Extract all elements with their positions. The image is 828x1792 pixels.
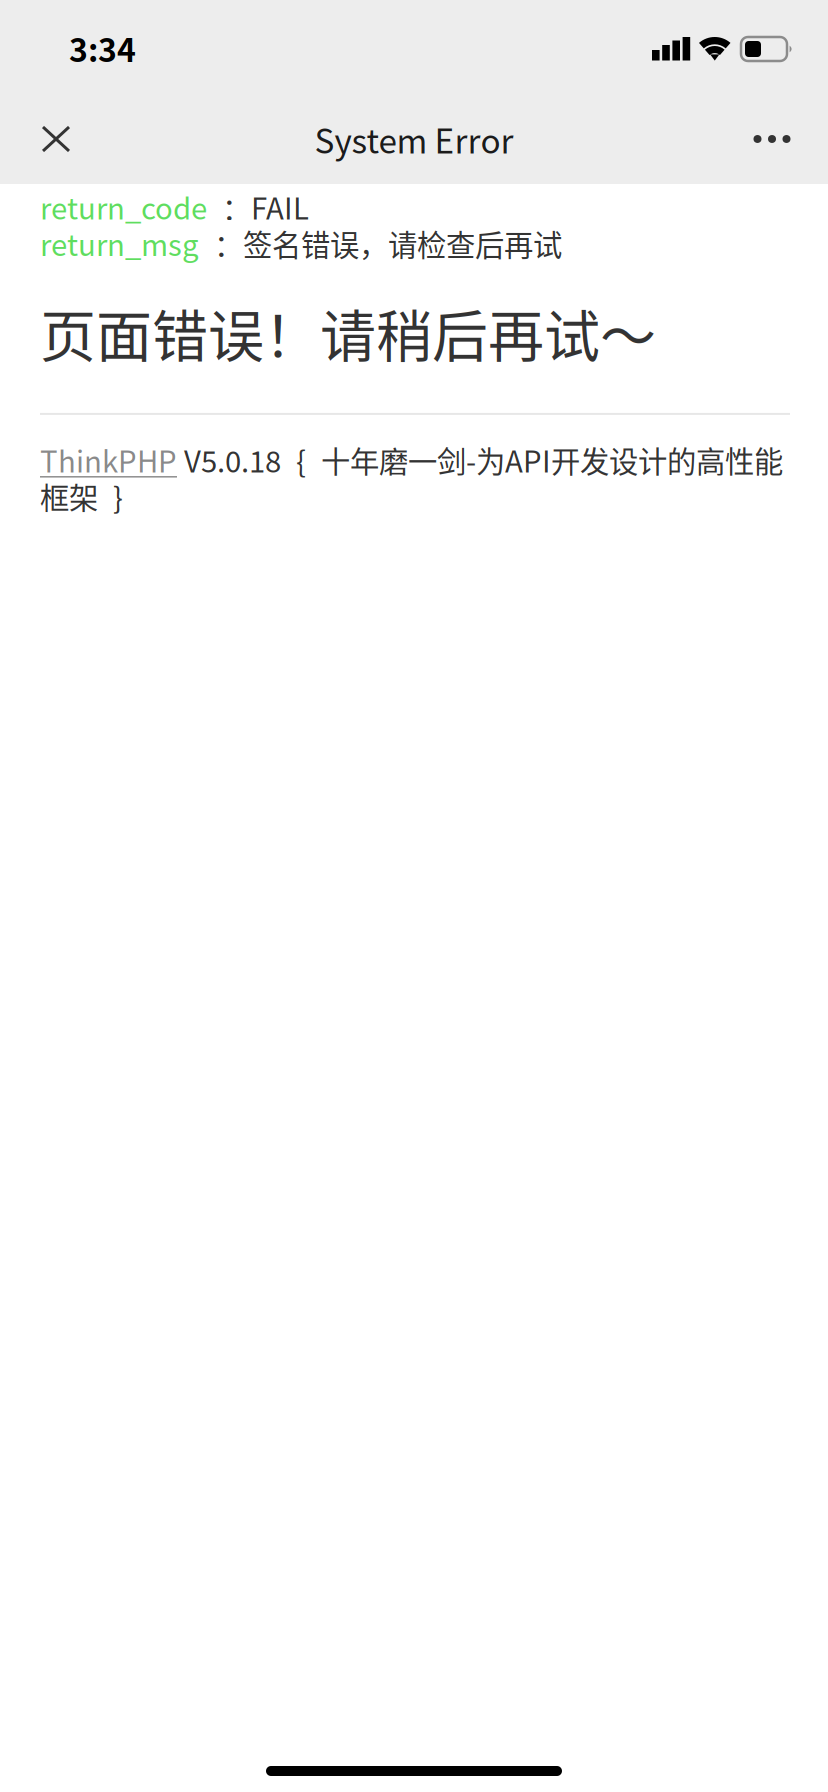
- button[interactable]: More: [729, 94, 815, 184]
- button[interactable]: Close: [13, 94, 99, 184]
- staticText: ThinkPHP V5.0.18 { 十年磨一剑-为API开发设计的高性能框架 …: [40, 439, 783, 517]
- staticText: 3:34: [69, 25, 136, 71]
- staticText: return_code ：FAIL return_msg ：签名错误，请检查后再…: [40, 186, 562, 264]
- staticText: System Error: [314, 115, 513, 163]
- button[interactable]: ThinkPHP: [40, 439, 177, 471]
- staticText: 页面错误！请稍后再试～: [40, 292, 656, 373]
